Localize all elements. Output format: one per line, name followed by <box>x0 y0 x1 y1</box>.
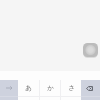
staticText: か <box>47 84 54 92</box>
button[interactable]: さ <box>61 80 81 96</box>
button[interactable]: か <box>40 80 60 96</box>
staticText: さ <box>68 84 75 92</box>
staticText: あ <box>25 84 32 92</box>
button[interactable]: Cursor right <box>0 80 18 96</box>
button[interactable]: あ <box>18 80 39 96</box>
button[interactable]: Backspace <box>81 80 100 96</box>
button[interactable]: Voice input <box>83 43 98 57</box>
